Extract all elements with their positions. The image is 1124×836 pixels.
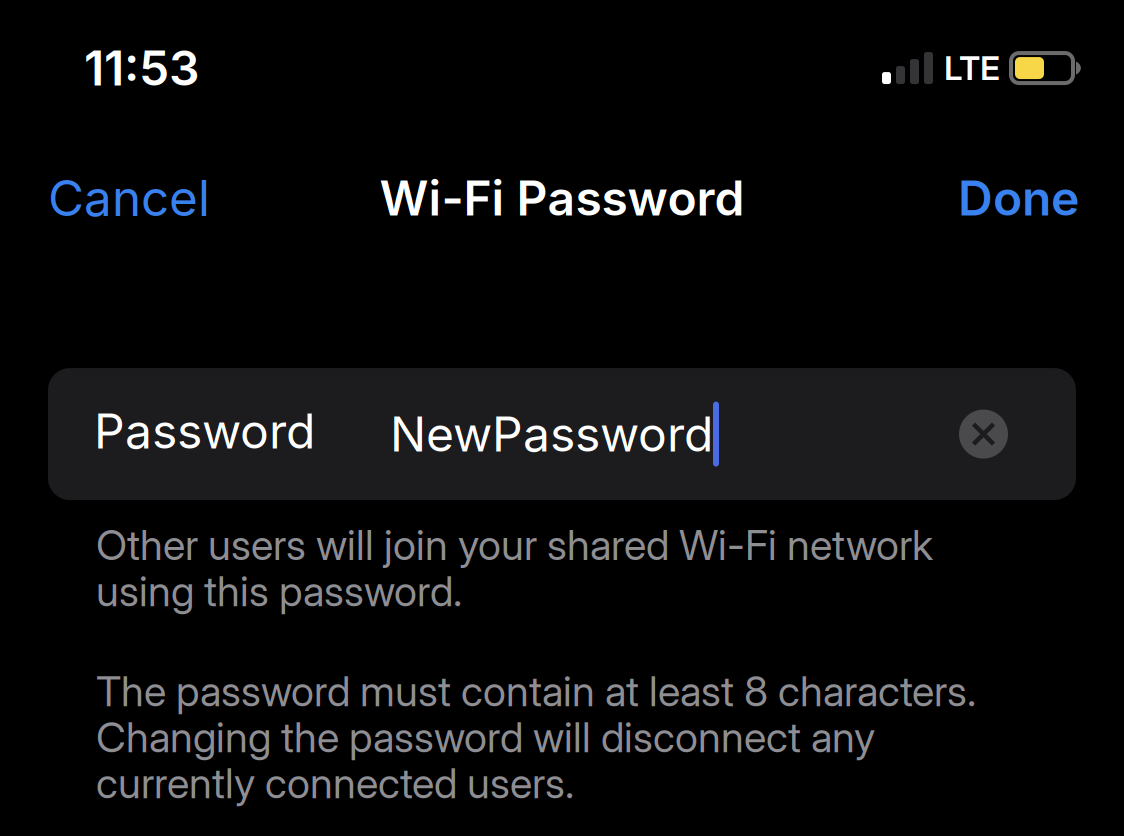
staticText: 11:53 <box>84 39 200 97</box>
button[interactable]: Cancel <box>48 148 210 248</box>
staticText: Done <box>958 169 1079 227</box>
staticText: Wi-Fi Password <box>379 169 744 227</box>
staticText: LTE <box>944 48 1000 88</box>
staticText: Password <box>94 402 315 460</box>
staticText: NewPassword <box>390 405 713 463</box>
staticText: The password must contain at least 8 cha… <box>96 666 976 808</box>
staticText: Other users will join your shared Wi-Fi … <box>96 520 933 616</box>
button[interactable]: Done <box>958 148 1079 248</box>
staticText: Cancel <box>48 168 210 228</box>
button[interactable]: Clear text <box>947 398 1020 471</box>
